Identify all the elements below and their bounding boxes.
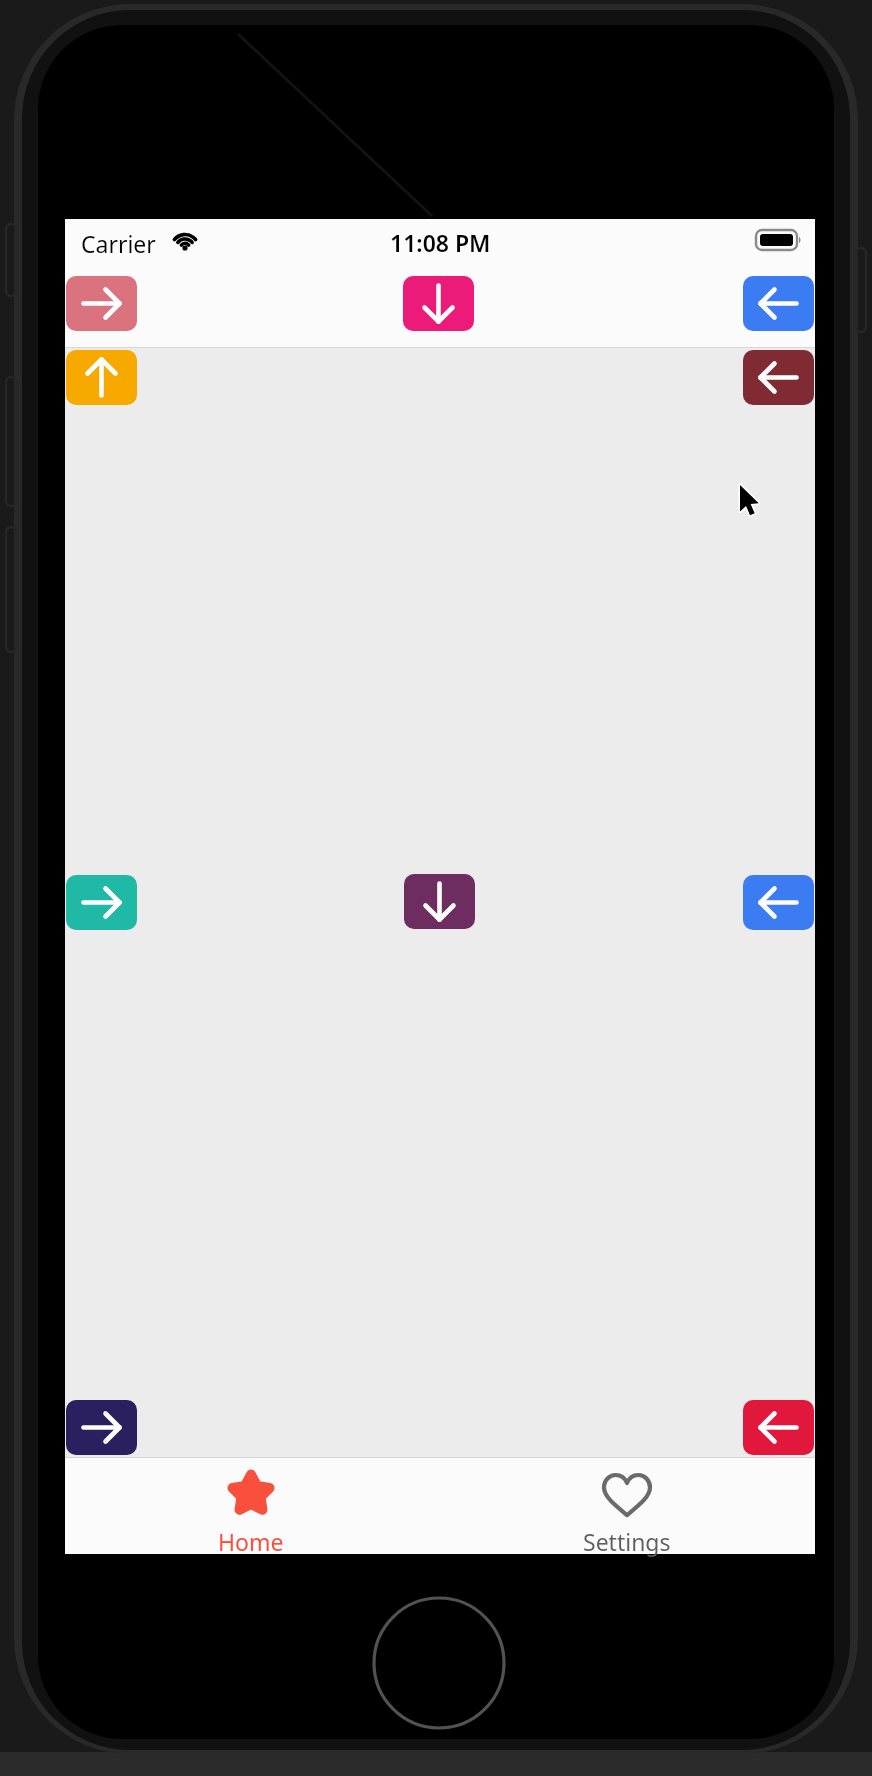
staticText: Settings: [583, 1526, 671, 1557]
button[interactable]: Settings: [557, 1462, 697, 1554]
staticText: Carrier: [81, 228, 156, 259]
button[interactable]: [66, 276, 137, 331]
button[interactable]: [743, 276, 814, 331]
button[interactable]: [66, 350, 137, 405]
button[interactable]: Home: [181, 1462, 321, 1554]
button[interactable]: [404, 874, 475, 929]
staticText: 11:08 PM: [390, 227, 491, 258]
staticText: Home: [218, 1526, 284, 1557]
button[interactable]: [66, 875, 137, 930]
button[interactable]: [66, 1400, 137, 1455]
button[interactable]: [743, 875, 814, 930]
button[interactable]: [743, 350, 814, 405]
button[interactable]: [403, 276, 474, 331]
button[interactable]: [743, 1400, 814, 1455]
